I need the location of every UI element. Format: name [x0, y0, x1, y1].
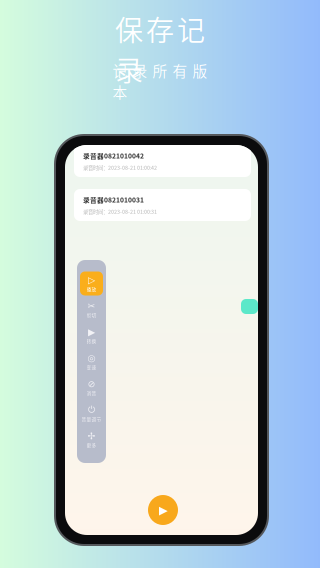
- staticText: 剪切: [86, 312, 96, 318]
- staticText: ▶: [88, 327, 95, 337]
- staticText: 变速: [86, 364, 96, 370]
- button[interactable]: 转换: [80, 323, 103, 347]
- button[interactable]: 展开工具: [241, 299, 258, 314]
- staticText: ⏻: [88, 405, 95, 415]
- button[interactable]: 录音器0821010031: [74, 189, 251, 221]
- staticText: 音量调节: [81, 416, 101, 422]
- button[interactable]: 录音器0821010042: [74, 145, 251, 177]
- staticText: ◎: [87, 353, 95, 363]
- button[interactable]: 剪切: [80, 297, 103, 321]
- staticText: ▶: [158, 503, 167, 517]
- button[interactable]: 消音: [80, 375, 103, 399]
- staticText: ▷: [88, 275, 95, 285]
- staticText: ⊘: [87, 379, 95, 389]
- button[interactable]: 音量调节: [80, 401, 103, 425]
- button[interactable]: 播放: [80, 271, 103, 295]
- staticText: 转换: [86, 338, 96, 344]
- button[interactable]: 变速: [80, 349, 103, 373]
- staticText: 播放: [86, 286, 96, 292]
- staticText: 录音时间：2023-08-21 01:00:31: [83, 207, 157, 215]
- staticText: 录音器0821010031: [83, 195, 144, 204]
- button[interactable]: 更多: [80, 427, 103, 451]
- button[interactable]: 播放: [148, 495, 178, 525]
- staticText: 消音: [86, 390, 96, 396]
- staticText: 保存记录: [115, 8, 205, 90]
- staticText: 录音时间：2023-08-21 01:00:42: [83, 163, 157, 171]
- staticText: ✂: [87, 301, 95, 311]
- staticText: 录音器0821010042: [83, 151, 144, 160]
- staticText: ✢: [87, 431, 95, 441]
- staticText: 更多: [86, 442, 96, 448]
- staticText: 记录所有版本: [112, 60, 207, 102]
